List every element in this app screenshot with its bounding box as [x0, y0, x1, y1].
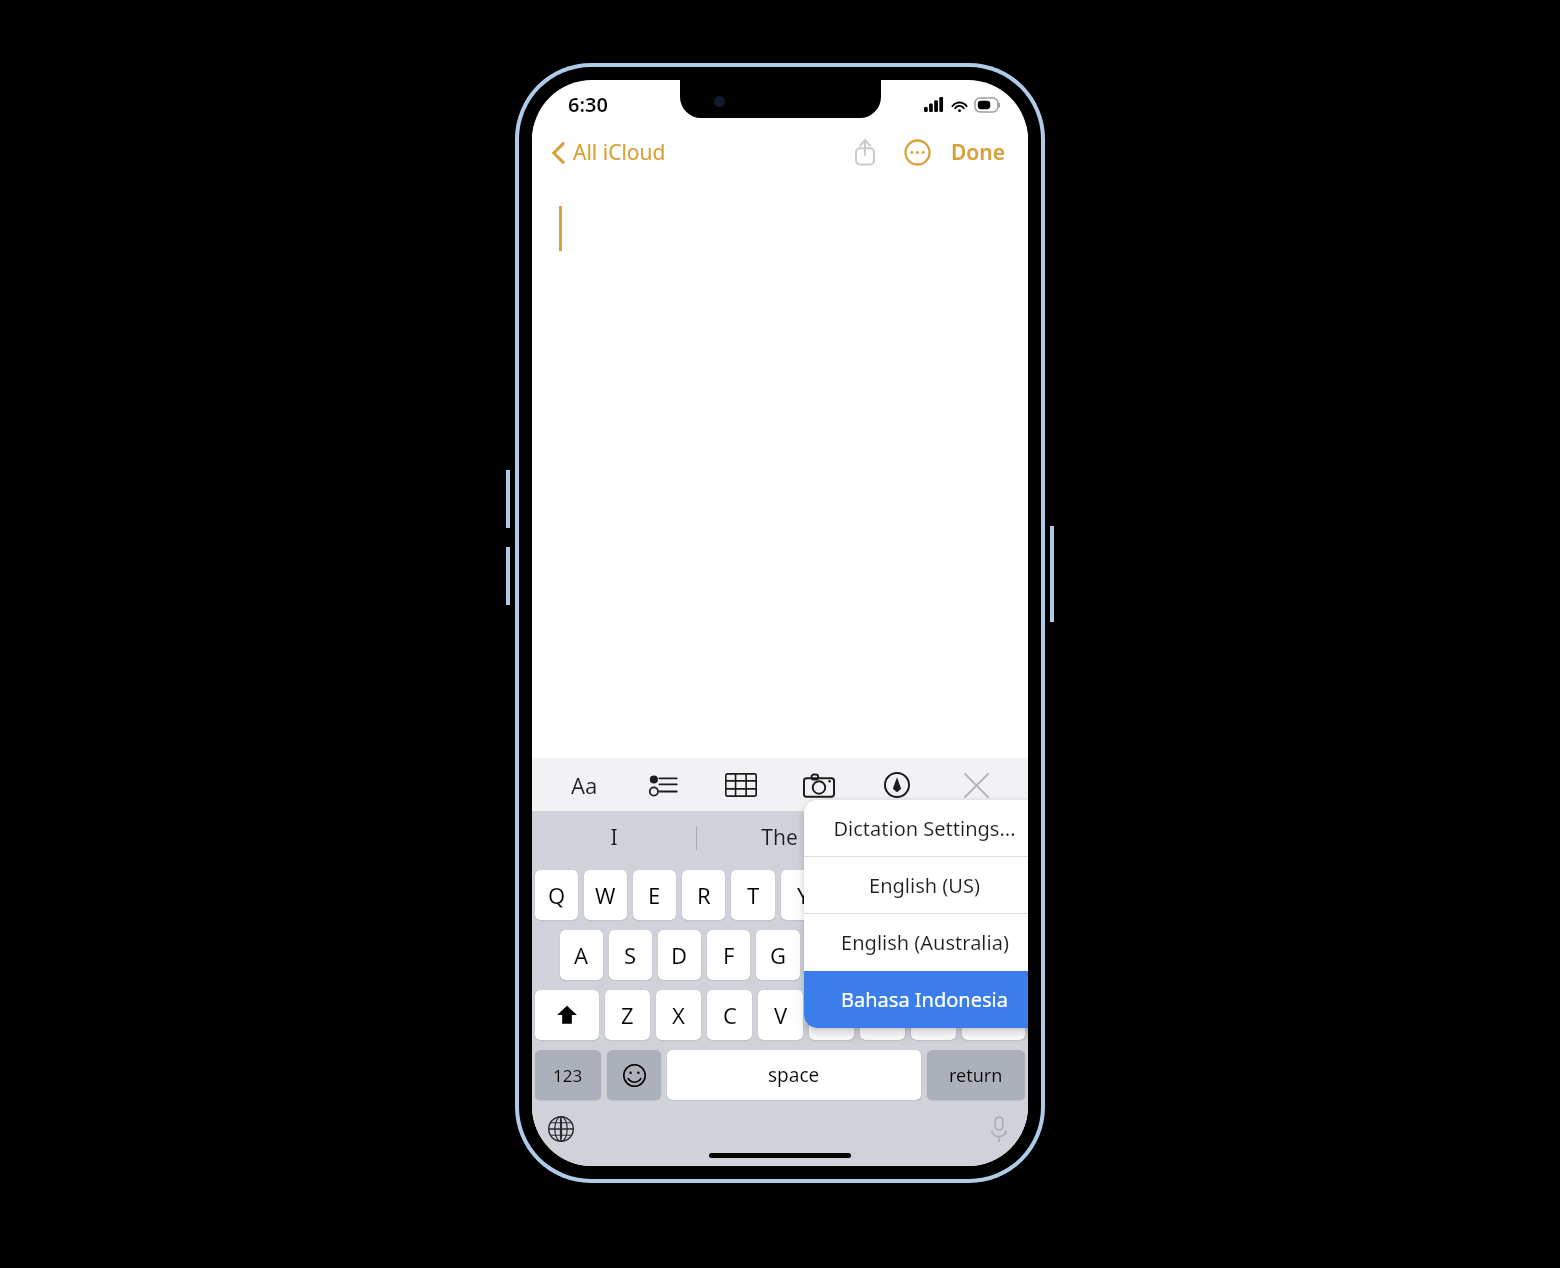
staticText: Y: [797, 880, 810, 910]
button[interactable]: English (Australia): [804, 914, 1028, 971]
button[interactable]: E: [633, 870, 676, 920]
button[interactable]: S: [609, 930, 652, 980]
button[interactable]: Shift: [535, 990, 599, 1040]
button[interactable]: Table: [715, 759, 767, 811]
staticText: B: [824, 1000, 839, 1030]
button[interactable]: B: [809, 990, 854, 1040]
staticText: 123: [553, 1064, 583, 1087]
staticText: M: [924, 1000, 944, 1030]
button[interactable]: T: [731, 870, 775, 920]
button[interactable]: 123: [535, 1050, 601, 1100]
staticText: I’m: [931, 823, 961, 852]
staticText: R: [697, 880, 711, 910]
staticText: N: [874, 1000, 891, 1030]
button[interactable]: Checklist: [637, 759, 689, 811]
staticText: E: [648, 880, 661, 910]
button[interactable]: R: [682, 870, 725, 920]
staticText: 6:30: [568, 91, 608, 118]
staticText: X: [672, 1000, 685, 1030]
staticText: return: [949, 1063, 1003, 1088]
button[interactable]: X: [656, 990, 701, 1040]
button[interactable]: I: [532, 811, 696, 864]
button[interactable]: V: [758, 990, 803, 1040]
button[interactable]: The: [697, 811, 862, 864]
staticText: K: [921, 940, 935, 970]
button[interactable]: U: [831, 870, 875, 920]
button[interactable]: Q: [535, 870, 578, 920]
staticText: F: [723, 940, 735, 970]
button[interactable]: O: [931, 870, 975, 920]
button[interactable]: Markup: [871, 759, 923, 811]
staticText: English (US): [869, 872, 980, 899]
staticText: O: [944, 880, 962, 910]
staticText: C: [723, 1000, 737, 1030]
staticText: J: [875, 940, 882, 970]
button[interactable]: space: [667, 1050, 921, 1100]
staticText: Aa: [571, 770, 598, 800]
button[interactable]: Text format: [558, 759, 610, 811]
button[interactable]: Share: [843, 130, 887, 174]
button[interactable]: J: [856, 930, 900, 980]
button[interactable]: return: [927, 1050, 1025, 1100]
button[interactable]: D: [658, 930, 701, 980]
button[interactable]: Y: [781, 870, 825, 920]
staticText: Dictation Settings...: [833, 815, 1016, 842]
button[interactable]: I’m: [863, 811, 1028, 864]
button[interactable]: G: [756, 930, 800, 980]
button[interactable]: P: [981, 870, 1025, 920]
staticText: I: [899, 880, 907, 910]
button[interactable]: M: [911, 990, 956, 1040]
staticText: S: [624, 940, 637, 970]
staticText: G: [770, 940, 787, 970]
button[interactable]: K: [906, 930, 950, 980]
staticText: W: [595, 880, 616, 910]
staticText: All iCloud: [573, 138, 666, 167]
staticText: V: [774, 1000, 788, 1030]
staticText: space: [768, 1062, 820, 1088]
staticText: A: [574, 940, 589, 970]
button[interactable]: Done: [943, 132, 1014, 173]
staticText: Done: [951, 138, 1006, 167]
button[interactable]: More options: [895, 130, 939, 174]
staticText: L: [972, 940, 984, 970]
button[interactable]: Dictation: [978, 1108, 1020, 1150]
staticText: Q: [548, 880, 566, 910]
staticText: I: [610, 823, 618, 852]
button[interactable]: Camera: [793, 759, 845, 811]
button[interactable]: Close keyboard: [950, 759, 1002, 811]
button[interactable]: H: [806, 930, 850, 980]
button[interactable]: W: [584, 870, 627, 920]
button[interactable]: F: [707, 930, 750, 980]
staticText: D: [671, 940, 688, 970]
button[interactable]: N: [860, 990, 905, 1040]
button[interactable]: L: [956, 930, 1000, 980]
button[interactable]: C: [707, 990, 752, 1040]
staticText: The: [761, 823, 798, 852]
button[interactable]: All iCloud: [544, 134, 674, 171]
button[interactable]: I: [881, 870, 925, 920]
staticText: Z: [621, 1000, 634, 1030]
button[interactable]: Change keyboard: [540, 1108, 582, 1150]
staticText: T: [747, 880, 760, 910]
button[interactable]: Bahasa Indonesia: [804, 971, 1028, 1028]
button[interactable]: A: [560, 930, 603, 980]
button[interactable]: Emoji: [607, 1050, 661, 1100]
button[interactable]: Dictation Settings...: [804, 800, 1028, 856]
staticText: English (Australia): [841, 929, 1009, 956]
staticText: Bahasa Indonesia: [841, 986, 1008, 1013]
button[interactable]: Delete: [962, 990, 1025, 1040]
button[interactable]: English (US): [804, 857, 1028, 913]
button[interactable]: Z: [605, 990, 650, 1040]
